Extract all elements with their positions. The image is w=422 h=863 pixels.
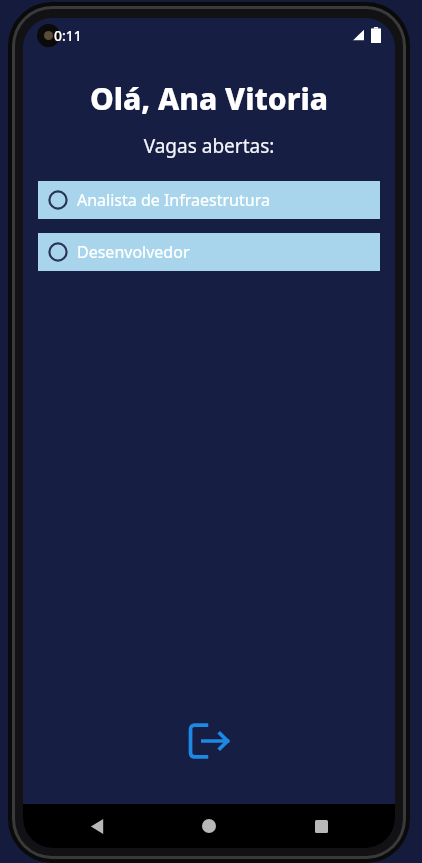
staticText: Desenvolvedor [77, 241, 190, 263]
button[interactable]: Home [189, 806, 229, 846]
staticText: Vagas abertas: [23, 133, 395, 159]
button[interactable]: Analista de Infraestrutura [38, 181, 380, 219]
button[interactable]: Back [77, 806, 117, 846]
staticText: 0:11 [54, 26, 82, 45]
staticText: Analista de Infraestrutura [77, 189, 270, 211]
button[interactable]: Sair [180, 712, 238, 770]
staticText: Olá, Ana Vitoria [23, 78, 395, 119]
button[interactable]: Desenvolvedor [38, 233, 380, 271]
button[interactable]: Recent apps [301, 806, 341, 846]
